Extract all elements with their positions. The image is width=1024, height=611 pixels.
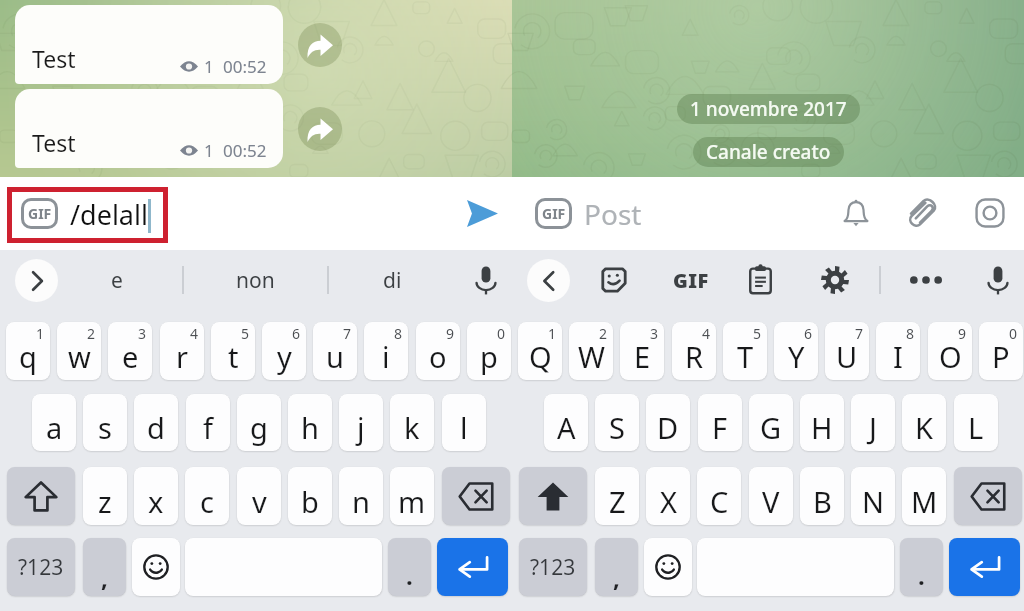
button[interactable]: N [851, 467, 895, 525]
button[interactable]: X [646, 467, 690, 525]
button[interactable]: Z [595, 467, 639, 525]
button[interactable]: GIF [535, 198, 572, 229]
button[interactable]: Test [15, 5, 283, 84]
button[interactable]: Comma [595, 538, 638, 596]
button[interactable]: e [108, 322, 152, 380]
button[interactable]: Test [15, 89, 283, 168]
button[interactable]: B [800, 467, 844, 525]
button[interactable]: Forward [298, 23, 342, 67]
button[interactable]: S [595, 394, 639, 451]
button[interactable]: h [288, 394, 332, 451]
button[interactable]: F [698, 394, 742, 451]
button[interactable]: j [339, 394, 383, 451]
button[interactable]: Settings [820, 265, 850, 295]
button[interactable]: Camera [971, 194, 1009, 232]
button[interactable]: Period [388, 538, 431, 596]
button[interactable]: Symbols [7, 538, 75, 596]
button[interactable]: M [902, 467, 946, 525]
button[interactable]: Symbols [519, 538, 587, 596]
button[interactable]: n [339, 467, 383, 525]
button[interactable]: Canale creato [706, 137, 831, 167]
button[interactable]: f [186, 394, 230, 451]
button[interactable]: y [262, 322, 306, 380]
button[interactable]: p [467, 322, 511, 380]
button[interactable]: b [288, 467, 332, 525]
button[interactable]: Voice input [470, 264, 502, 296]
button[interactable]: Attach [904, 194, 942, 232]
button[interactable]: Enter [949, 538, 1020, 596]
button[interactable]: T [723, 322, 767, 380]
button[interactable]: Expand toolbar [15, 259, 58, 302]
button[interactable]: R [672, 322, 716, 380]
button[interactable]: d [134, 394, 178, 451]
button[interactable]: Voice input [982, 264, 1014, 296]
button[interactable]: Backspace [954, 467, 1022, 525]
button[interactable]: z [83, 467, 127, 525]
button[interactable]: K [902, 394, 946, 451]
button[interactable]: V [749, 467, 793, 525]
button[interactable]: o [416, 322, 460, 380]
button[interactable]: W [569, 322, 613, 380]
button[interactable]: k [390, 394, 434, 451]
button[interactable]: non [221, 258, 289, 303]
button[interactable]: U [825, 322, 869, 380]
staticText: ?123 [530, 553, 576, 582]
button[interactable]: J [851, 394, 895, 451]
button[interactable]: A [544, 394, 588, 451]
staticText: 5 [753, 324, 762, 343]
button[interactable]: g [237, 394, 281, 451]
button[interactable]: Emoji [644, 538, 692, 596]
button[interactable]: s [83, 394, 127, 451]
button[interactable]: Notifications [837, 194, 875, 232]
button[interactable]: Clipboard [745, 265, 775, 295]
staticText: 1 [204, 55, 214, 78]
button[interactable]: 1 novembre 2017 [690, 94, 847, 124]
button[interactable]: v [237, 467, 281, 525]
button[interactable]: More options [907, 270, 945, 290]
button[interactable]: m [390, 467, 434, 525]
button[interactable]: Y [774, 322, 818, 380]
button[interactable]: L [954, 394, 998, 451]
staticText: Y [788, 337, 805, 376]
button[interactable]: C [697, 467, 741, 525]
button[interactable]: di [358, 258, 426, 303]
button[interactable]: Shift [519, 467, 587, 525]
button[interactable]: D [646, 394, 690, 451]
button[interactable]: i [364, 322, 408, 380]
staticText: 6 [292, 324, 301, 343]
staticText: 8 [906, 324, 915, 343]
button[interactable]: Forward [298, 107, 342, 151]
button[interactable]: w [57, 322, 101, 380]
button[interactable]: I [876, 322, 920, 380]
button[interactable]: e [83, 258, 151, 303]
button[interactable]: Emoji [132, 538, 180, 596]
button[interactable]: E [620, 322, 664, 380]
button[interactable]: Backspace [442, 467, 510, 525]
button[interactable]: O [928, 322, 972, 380]
button[interactable]: G [749, 394, 793, 451]
button[interactable]: Enter [437, 538, 508, 596]
button[interactable]: GIF keyboard [670, 265, 712, 295]
button[interactable]: Send [463, 196, 501, 230]
button[interactable]: Period [900, 538, 943, 596]
button[interactable]: t [211, 322, 255, 380]
button[interactable]: r [160, 322, 204, 380]
staticText: 4 [702, 324, 711, 343]
button[interactable]: Q [518, 322, 562, 380]
button[interactable]: Sticker [599, 265, 629, 295]
button[interactable]: Comma [83, 538, 126, 596]
button[interactable]: H [800, 394, 844, 451]
button[interactable]: u [313, 322, 357, 380]
button[interactable]: Shift [7, 467, 75, 525]
button[interactable]: x [134, 467, 178, 525]
button[interactable]: Back [527, 259, 570, 302]
button[interactable]: q [6, 322, 50, 380]
button[interactable]: l [442, 394, 486, 451]
button[interactable]: P [979, 322, 1023, 380]
staticText: ?123 [18, 553, 64, 582]
button[interactable]: a [32, 394, 76, 451]
button[interactable]: c [185, 467, 229, 525]
button[interactable]: GIF [21, 198, 58, 229]
